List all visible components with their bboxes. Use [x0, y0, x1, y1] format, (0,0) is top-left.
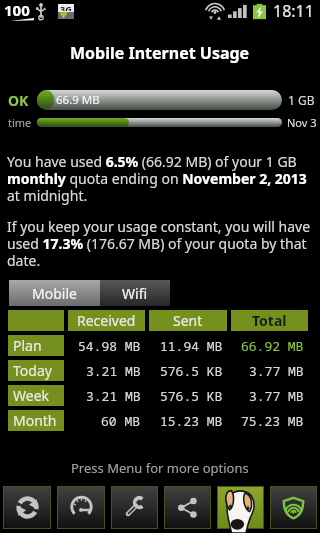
button[interactable]: Settings: [112, 487, 157, 528]
staticText: 54.98 MB: [78, 337, 141, 355]
staticText: 1 GB: [288, 92, 315, 108]
staticText: You have used 6.5% (66.92 MB) of your 1 …: [7, 152, 317, 205]
staticText: Week: [13, 386, 50, 405]
staticText: 100: [4, 0, 30, 20]
staticText: Nov 3: [287, 115, 317, 130]
staticText: Press Menu for more options: [71, 459, 249, 477]
button[interactable]: Mobile: [9, 280, 100, 306]
button[interactable]: Sent: [149, 310, 227, 331]
button[interactable]: Today: [8, 360, 64, 381]
staticText: time: [8, 115, 32, 130]
staticText: OK: [8, 91, 29, 110]
staticText: 3.77 MB: [249, 387, 304, 405]
button[interactable]: Plan: [8, 335, 64, 356]
button[interactable]: Week: [8, 385, 64, 406]
staticText: 3.21 MB: [86, 387, 141, 405]
button[interactable]: Received: [68, 310, 145, 331]
staticText: 11.94 MB: [160, 337, 223, 355]
button[interactable]: Security: [271, 487, 316, 528]
staticText: Sent: [173, 311, 203, 330]
staticText: Plan: [13, 336, 42, 355]
staticText: Received: [77, 311, 136, 330]
staticText: Mobile Internet Usage: [70, 42, 250, 64]
staticText: 18:11: [273, 0, 314, 22]
staticText: 75.23 MB: [241, 412, 304, 430]
staticText: Wifi: [122, 284, 148, 303]
staticText: 576.5 KB: [160, 387, 223, 405]
button[interactable]: Month: [8, 410, 64, 431]
staticText: Mobile: [32, 284, 77, 303]
staticText: 3G: [60, 3, 72, 11]
staticText: Today: [13, 361, 52, 380]
button[interactable]: Speed test: [58, 487, 104, 528]
staticText: 3.77 MB: [249, 362, 304, 380]
staticText: If you keep your usage constant, you wil…: [7, 217, 317, 270]
button[interactable]: Total: [231, 310, 308, 331]
button[interactable]: Share: [165, 487, 210, 528]
button[interactable]: Refresh: [4, 487, 50, 528]
staticText: 15.23 MB: [160, 412, 223, 430]
staticText: Total: [252, 311, 287, 330]
button[interactable]: Data usage app: [218, 487, 263, 528]
staticText: 66.92 MB: [241, 337, 304, 355]
staticText: 66.9 MB: [56, 92, 100, 108]
staticText: 3.21 MB: [86, 362, 141, 380]
staticText: 60 MB: [101, 412, 141, 430]
button[interactable]: Wifi: [100, 280, 170, 306]
staticText: 576.5 KB: [160, 362, 223, 380]
staticText: Month: [13, 411, 57, 430]
